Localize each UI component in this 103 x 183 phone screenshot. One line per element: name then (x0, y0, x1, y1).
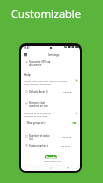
button[interactable]: Transfer (45, 155, 57, 159)
staticText: Number of statio (29, 134, 50, 137)
staticText: Go defa (62, 135, 71, 138)
button[interactable]: Back (32, 165, 37, 170)
staticText: Remove all of particular uploads on this… (24, 111, 58, 118)
staticText: Default Asset U (29, 90, 48, 93)
staticText: Customizable (11, 6, 81, 21)
staticText: discoverie (29, 63, 42, 66)
button[interactable]: Recents (65, 165, 70, 170)
button[interactable]: Max group on t (21, 120, 80, 125)
staticText: markers on cov (29, 104, 48, 107)
staticText: Help (24, 73, 31, 77)
button[interactable]: Status marker s (21, 143, 80, 148)
button[interactable]: Default Asset U (21, 89, 80, 94)
staticText: Favourite GPS sta (29, 60, 51, 63)
staticText: Transfer (46, 156, 57, 159)
button[interactable]: Favourite GPS sta (21, 59, 80, 66)
staticText: list (29, 137, 33, 140)
staticText: Max group on t (27, 121, 46, 124)
staticText: Go defa (61, 144, 70, 147)
staticText: 9:41 (24, 46, 30, 50)
button[interactable]: Info (75, 112, 78, 115)
staticText: works great on all (44, 160, 62, 163)
staticText: Adjust how often you need to transfer yo… (24, 79, 72, 86)
staticText: Remove clust (29, 101, 46, 104)
staticText: Status marker s (29, 144, 49, 147)
button[interactable]: Menu (24, 53, 27, 56)
staticText: Go defa (63, 90, 72, 93)
button[interactable]: Number of statio (21, 133, 80, 140)
staticText: Settings (48, 53, 60, 57)
button[interactable]: More info (75, 79, 78, 82)
button[interactable]: Remove clust (21, 100, 80, 107)
button[interactable]: Home (48, 165, 53, 170)
